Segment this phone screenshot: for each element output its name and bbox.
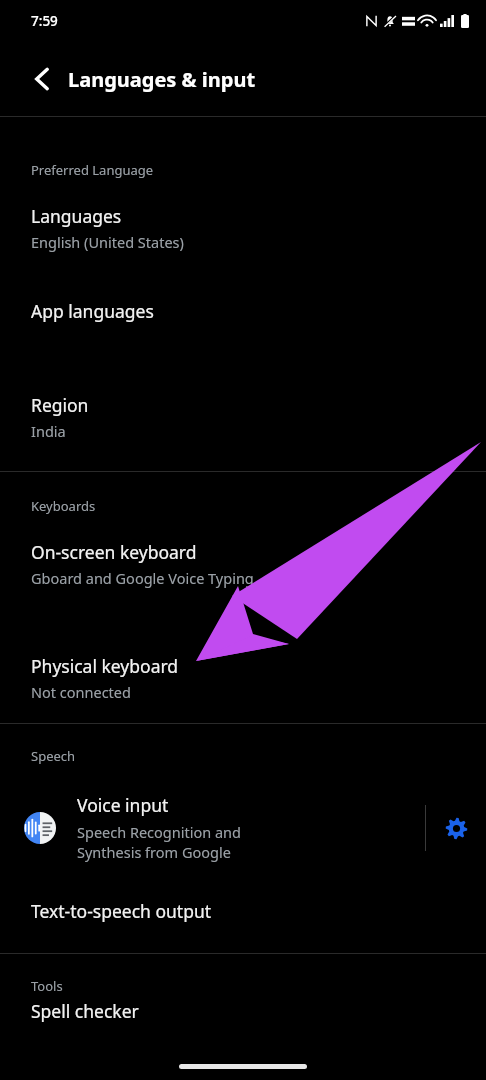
staticText: Text-to-speech output xyxy=(31,899,212,923)
button[interactable]: Physical keyboard xyxy=(0,629,486,704)
staticText: App languages xyxy=(31,299,154,323)
button[interactable]: Spell checker xyxy=(0,995,486,1027)
button[interactable]: Region xyxy=(0,368,486,443)
button[interactable]: App languages xyxy=(0,295,486,327)
staticText: Keyboards xyxy=(31,497,96,515)
button[interactable]: On-screen keyboard xyxy=(0,515,486,590)
staticText: India xyxy=(31,421,66,441)
staticText: Region xyxy=(31,393,89,417)
button[interactable]: Voice input xyxy=(0,787,425,869)
staticText: Physical keyboard xyxy=(31,654,179,678)
staticText: English (United States) xyxy=(31,232,184,252)
staticText: Speech Recognition and Synthesis from Go… xyxy=(77,822,241,863)
button[interactable]: Voice input settings xyxy=(426,797,486,859)
button[interactable]: Text-to-speech output xyxy=(0,895,486,927)
staticText: Languages & input xyxy=(68,66,256,93)
staticText: On-screen keyboard xyxy=(31,540,197,564)
staticText: Tools xyxy=(31,977,63,995)
staticText: Not connected xyxy=(31,682,131,702)
button[interactable]: Back xyxy=(22,59,62,99)
staticText: Voice input xyxy=(77,793,169,817)
staticText: Speech xyxy=(31,747,76,765)
staticText: 7:59 xyxy=(31,12,58,30)
staticText: Preferred Language xyxy=(31,161,154,179)
button[interactable]: Languages xyxy=(0,179,486,254)
staticText: Languages xyxy=(31,204,122,228)
staticText: Gboard and Google Voice Typing xyxy=(31,568,254,588)
staticText: Spell checker xyxy=(31,999,139,1023)
